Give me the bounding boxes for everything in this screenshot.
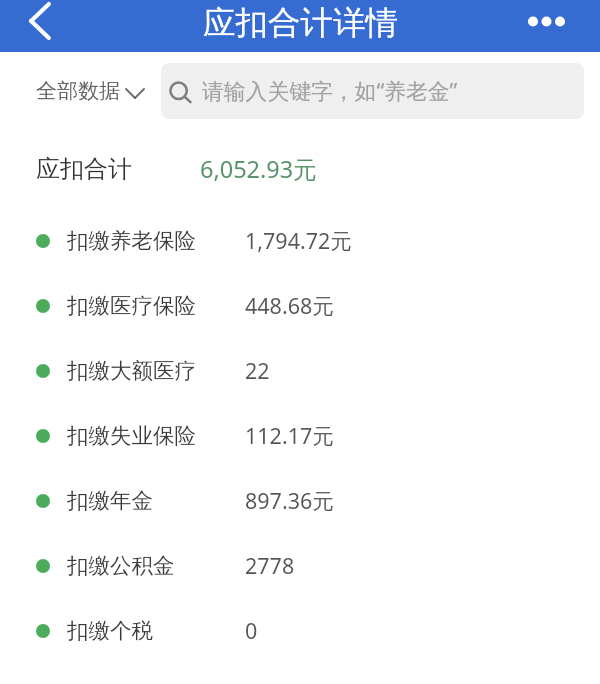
button[interactable]: 扣缴失业保险 [0,403,600,468]
button[interactable]: 扣缴养老保险 [0,208,600,273]
staticText: 请输入关键字，如“养老金” [202,76,458,106]
staticText: 扣缴公积金 [67,552,175,579]
button[interactable]: 扣缴公积金 [0,533,600,598]
button[interactable]: 请输入关键字，如“养老金” [161,63,584,119]
button[interactable]: 扣缴医疗保险 [0,273,600,338]
button[interactable]: Back [0,0,79,52]
staticText: 897.36元 [245,486,334,515]
staticText: 448.68元 [245,291,334,320]
button[interactable]: More options [492,0,600,52]
staticText: 全部数据 [36,78,120,104]
button[interactable]: 扣缴个税 [0,598,600,663]
staticText: 扣缴大额医疗 [67,357,196,384]
staticText: 应扣合计 [36,154,132,184]
button[interactable]: 全部数据 [36,78,144,104]
button[interactable]: 扣缴大额医疗 [0,338,600,403]
staticText: 6,052.93元 [200,153,317,185]
staticText: 扣缴失业保险 [67,422,196,449]
button[interactable]: 扣缴年金 [0,468,600,533]
staticText: 扣缴年金 [67,487,153,514]
staticText: 2778 [245,551,295,580]
staticText: 0 [245,616,258,645]
staticText: 扣缴个税 [67,617,153,644]
staticText: 应扣合计详情 [203,3,398,44]
staticText: 22 [245,356,270,385]
staticText: 1,794.72元 [245,226,352,255]
staticText: 112.17元 [245,421,334,450]
staticText: 扣缴医疗保险 [67,292,196,319]
staticText: 扣缴养老保险 [67,227,196,254]
